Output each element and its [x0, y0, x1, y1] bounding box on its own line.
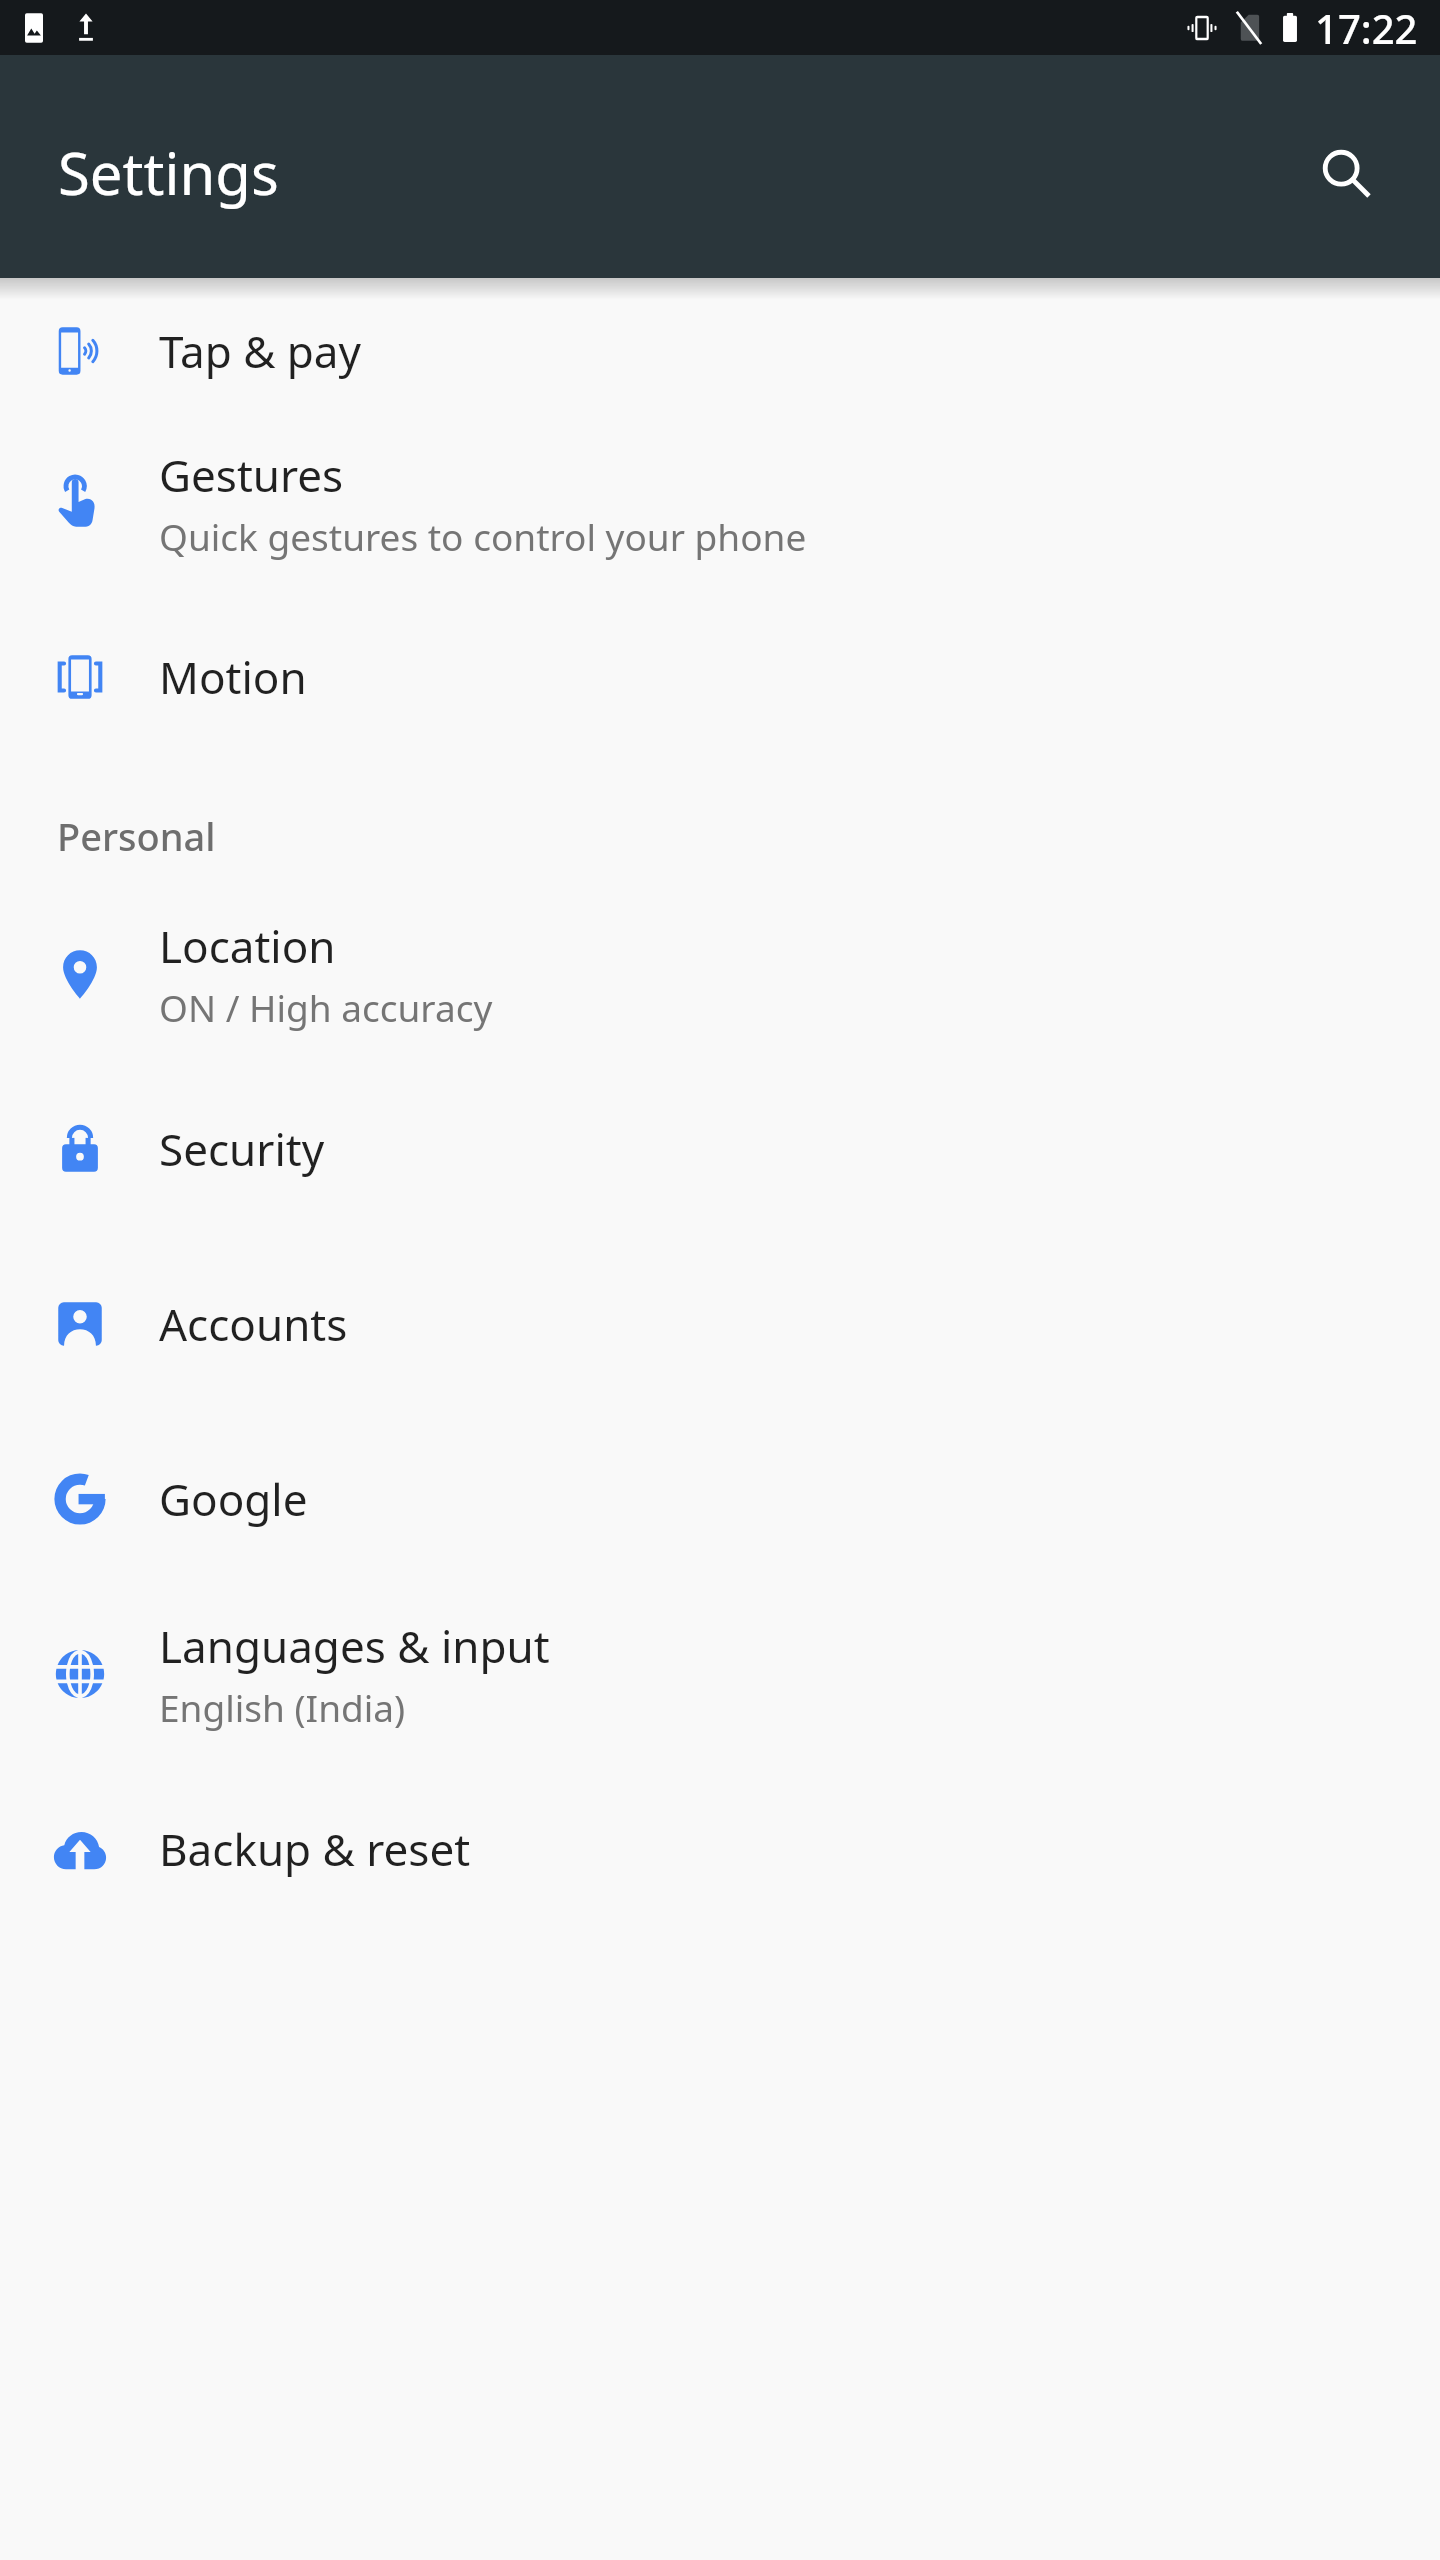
staticText: Location	[159, 916, 336, 976]
staticText: Google	[159, 1469, 308, 1529]
staticText: Gestures	[159, 445, 344, 505]
staticText: Backup & reset	[159, 1819, 471, 1879]
staticText: Security	[159, 1119, 325, 1179]
button[interactable]: Backup & reset	[0, 1761, 1440, 1936]
button[interactable]: Location	[0, 886, 1440, 1061]
staticText: Quick gestures to control your phone	[159, 511, 807, 561]
button[interactable]: Security	[0, 1061, 1440, 1236]
staticText: Motion	[159, 647, 307, 707]
button[interactable]: Search	[1298, 125, 1394, 221]
staticText: Languages & input	[159, 1616, 550, 1676]
button[interactable]: Google	[0, 1411, 1440, 1586]
staticText: English (India)	[159, 1682, 406, 1732]
button[interactable]: Accounts	[0, 1236, 1440, 1411]
staticText: 17:22	[1315, 1, 1418, 55]
staticText: Settings	[58, 133, 279, 212]
button[interactable]: Tap & pay	[0, 286, 1440, 416]
button[interactable]: Gestures	[0, 416, 1440, 590]
staticText: Accounts	[159, 1294, 348, 1354]
staticText: ON / High accuracy	[159, 982, 493, 1032]
button[interactable]: Languages & input	[0, 1586, 1440, 1761]
staticText: Tap & pay	[159, 321, 361, 381]
button[interactable]: Motion	[0, 590, 1440, 764]
staticText: Personal	[57, 810, 216, 862]
